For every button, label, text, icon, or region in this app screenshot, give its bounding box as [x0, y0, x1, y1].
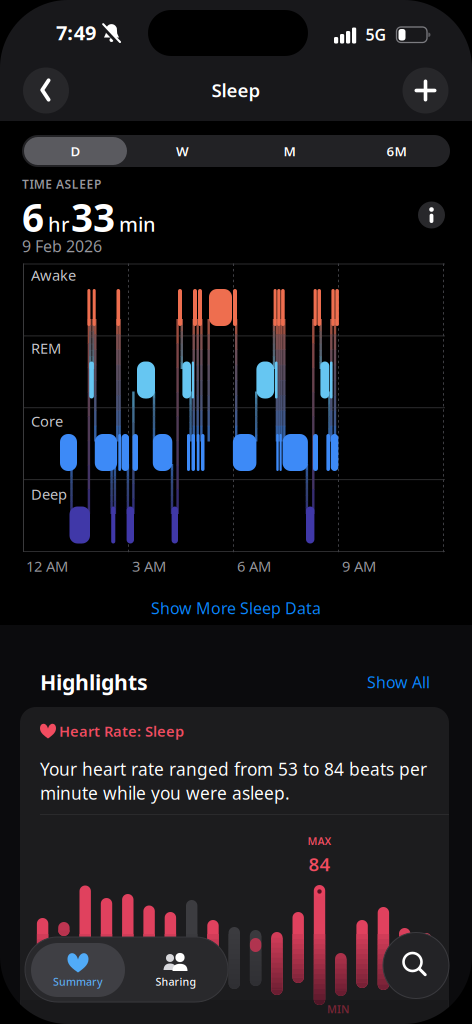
staticText: Core [31, 411, 63, 431]
staticText: MAX [307, 834, 331, 848]
button[interactable]: Heart Rate: Sleep highlight [20, 707, 449, 1024]
staticText: MIN [327, 1002, 349, 1016]
staticText: Awake [31, 265, 76, 285]
button[interactable]: Sharing [129, 943, 223, 997]
staticText: Sleep [211, 78, 260, 102]
staticText: M [283, 142, 295, 160]
staticText: 5G [365, 24, 386, 45]
staticText: Show More Sleep Data [151, 597, 321, 619]
staticText: 6 AM [237, 556, 271, 576]
staticText: min [119, 211, 156, 237]
staticText: Your heart rate ranged from 53 to 84 bea… [40, 757, 427, 780]
button[interactable]: Back [23, 67, 69, 113]
button[interactable]: M [238, 137, 341, 165]
button[interactable]: 6M [345, 137, 448, 165]
staticText: Sharing [155, 974, 196, 989]
staticText: TIME ASLEEP [22, 176, 101, 192]
button[interactable]: Summary [31, 943, 125, 997]
button[interactable]: Info [418, 201, 445, 228]
staticText: 6 [22, 191, 44, 243]
staticText: 9 Feb 2026 [22, 235, 102, 257]
staticText: 12 AM [26, 556, 68, 576]
staticText: Summary [53, 974, 103, 989]
button[interactable]: W [131, 137, 234, 165]
staticText: 3 AM [132, 556, 166, 576]
staticText: 9 AM [342, 556, 376, 576]
staticText: Highlights [40, 668, 148, 696]
staticText: D [70, 142, 80, 160]
staticText: Heart Rate: Sleep [59, 721, 184, 741]
staticText: minute while you were asleep. [40, 781, 290, 804]
button[interactable]: Search [383, 932, 449, 998]
button[interactable]: Show More Sleep Data [86, 590, 386, 626]
staticText: 7:49 [56, 19, 96, 46]
staticText: 84 [308, 852, 330, 876]
staticText: 6M [386, 142, 406, 160]
staticText: Deep [31, 484, 67, 504]
staticText: REM [31, 338, 61, 358]
button[interactable]: D [24, 137, 127, 165]
staticText: Show All [367, 671, 430, 693]
staticText: 33 [71, 191, 115, 243]
staticText: W [176, 142, 189, 160]
button[interactable]: Show All [320, 666, 430, 698]
button[interactable]: Add Data [402, 67, 448, 113]
staticText: hr [48, 211, 69, 237]
